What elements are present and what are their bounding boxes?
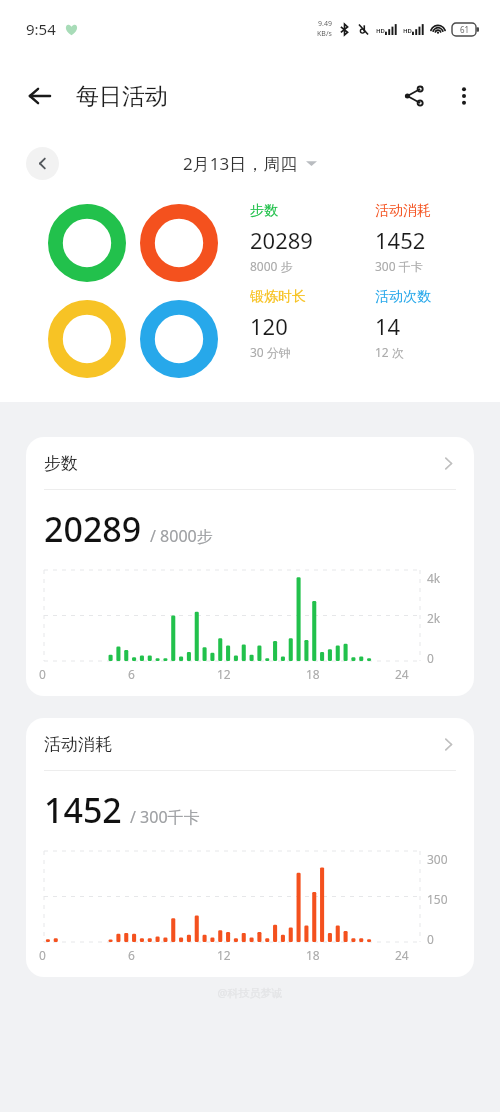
button[interactable]: 锻炼时长 [250,288,375,360]
staticText: HD [376,27,385,35]
staticText: 活动消耗 [44,734,112,755]
staticText: 8000 步 [250,258,293,274]
staticText: 2月13日，周四 [183,152,298,175]
staticText: 18 [306,666,320,682]
staticText: 锻炼时长 [250,288,306,306]
staticText: 4k [427,570,441,586]
staticText: 活动消耗 [375,202,431,220]
staticText: 150 [427,891,448,907]
staticText: 0 [427,650,434,666]
staticText: 9:54 [26,19,56,39]
staticText: 1452 [44,787,122,833]
staticText: 活动次数 [375,288,431,306]
staticText: 6 [128,947,135,963]
staticText: 1452 [375,225,426,255]
staticText: 20289 [250,225,313,255]
staticText: 20289 [44,506,142,552]
button[interactable]: Share [392,74,436,118]
button[interactable]: 活动消耗 [26,718,474,977]
staticText: 每日活动 [76,82,168,111]
staticText: 61 [460,24,470,35]
staticText: 24 [395,947,409,963]
staticText: 0 [39,947,46,963]
staticText: 9.49 [318,19,332,29]
button[interactable]: Back [18,74,62,118]
staticText: / 8000步 [150,525,213,547]
staticText: 18 [306,947,320,963]
button[interactable]: Previous day [26,147,59,180]
staticText: 0 [427,931,434,947]
staticText: KB/s [317,29,332,39]
staticText: 24 [395,666,409,682]
button[interactable]: More options [442,74,486,118]
staticText: 300 [427,851,448,867]
staticText: 步数 [250,202,278,220]
staticText: HD [403,27,412,35]
staticText: 120 [250,311,288,341]
staticText: 12 次 [375,344,404,360]
staticText: 30 分钟 [250,344,291,360]
button[interactable]: 步数 [250,202,375,274]
staticText: 0 [39,666,46,682]
staticText: / 300千卡 [130,806,200,828]
staticText: 6 [128,666,135,682]
button[interactable]: 活动次数 [375,288,500,360]
button[interactable]: 活动消耗 [375,202,500,274]
staticText: 300 千卡 [375,258,423,274]
staticText: 12 [217,947,231,963]
staticText: 2k [427,610,441,626]
staticText: 步数 [44,453,78,474]
button[interactable]: 2月13日，周四 [177,148,323,179]
button[interactable]: 步数 [26,437,474,696]
staticText: 14 [375,311,401,341]
staticText: 12 [217,666,231,682]
